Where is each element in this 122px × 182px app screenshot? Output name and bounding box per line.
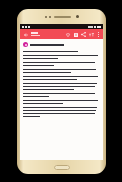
button[interactable]: Save: [72, 31, 79, 38]
button[interactable]: Text size: [88, 31, 95, 38]
button[interactable]: Home: [54, 165, 70, 170]
button[interactable]: [23, 42, 100, 47]
button[interactable]: More options: [96, 32, 101, 37]
button[interactable]: Favorite: [64, 31, 71, 38]
button[interactable]: Share: [80, 31, 87, 38]
button[interactable]: Back: [22, 31, 29, 38]
button[interactable]: [31, 32, 40, 36]
